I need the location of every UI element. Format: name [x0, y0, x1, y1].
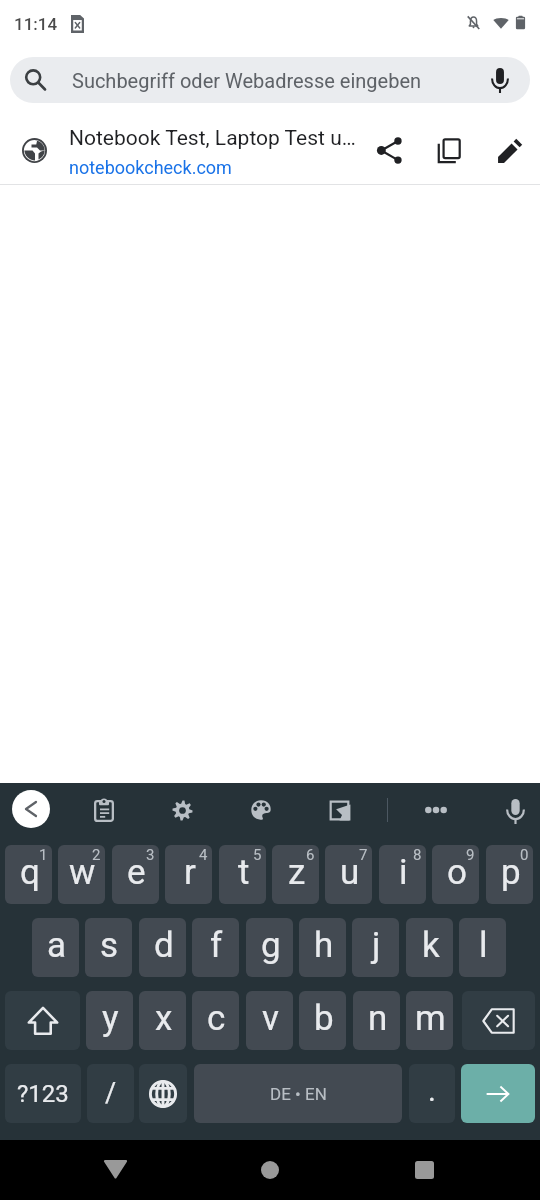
staticText: a	[47, 925, 67, 966]
button[interactable]: f	[192, 918, 239, 977]
staticText: k	[422, 925, 440, 966]
button[interactable]: u	[325, 845, 372, 904]
button[interactable]: Theme	[241, 790, 281, 830]
button[interactable]	[0, 103, 540, 185]
staticText: j	[372, 925, 381, 966]
staticText: h	[314, 925, 334, 966]
button[interactable]: Settings	[162, 790, 202, 830]
button[interactable]: Suchbegriff oder Webadresse eingeben	[10, 57, 530, 103]
staticText: p	[501, 852, 521, 893]
button[interactable]: Recents	[396, 1142, 452, 1198]
button[interactable]: Copy	[425, 128, 471, 174]
staticText: n	[368, 998, 388, 1039]
button[interactable]: w	[58, 845, 105, 904]
staticText: 1	[39, 846, 48, 864]
button[interactable]: Backspace	[462, 991, 535, 1050]
staticText: Suchbegriff oder Webadresse eingeben	[72, 69, 422, 92]
staticText: 3	[146, 846, 155, 864]
staticText: .	[428, 1073, 436, 1108]
staticText: o	[447, 852, 467, 893]
staticText: 5	[253, 846, 262, 864]
button[interactable]: x	[139, 991, 186, 1050]
button[interactable]: h	[299, 918, 346, 977]
staticText: t	[238, 852, 250, 893]
button[interactable]: r	[165, 845, 212, 904]
button[interactable]: Clipboard	[84, 790, 124, 830]
button[interactable]: e	[112, 845, 159, 904]
button[interactable]: Voice search	[477, 57, 523, 103]
staticText: f	[210, 925, 223, 966]
button[interactable]: d	[139, 918, 186, 977]
button[interactable]: v	[246, 991, 293, 1050]
button[interactable]: Voice input	[495, 791, 535, 831]
staticText: ?123	[17, 1080, 69, 1108]
staticText: 9	[466, 846, 475, 864]
staticText: /	[105, 1077, 117, 1109]
button[interactable]: /	[87, 1064, 134, 1123]
staticText: z	[288, 852, 306, 893]
button[interactable]: n	[353, 991, 400, 1050]
staticText: e	[127, 852, 146, 893]
button[interactable]: Go	[461, 1064, 535, 1123]
staticText: 6	[306, 846, 315, 864]
staticText: 2	[92, 846, 101, 864]
staticText: v	[262, 998, 279, 1039]
button[interactable]: Change language	[139, 1064, 187, 1123]
button[interactable]: j	[352, 918, 399, 977]
staticText: r	[184, 852, 196, 893]
staticText: 4	[199, 846, 208, 864]
button[interactable]: z	[272, 845, 319, 904]
button[interactable]: g	[246, 918, 293, 977]
staticText: notebookcheck.com	[69, 157, 232, 178]
staticText: y	[102, 998, 119, 1039]
staticText: s	[100, 925, 119, 966]
staticText: 11:14	[14, 14, 58, 34]
staticText: u	[340, 852, 360, 893]
staticText: i	[399, 852, 408, 893]
button[interactable]: c	[192, 991, 239, 1050]
staticText: q	[20, 852, 40, 893]
button[interactable]: m	[406, 991, 453, 1050]
button[interactable]: Back	[87, 1141, 143, 1197]
button[interactable]: .	[409, 1064, 455, 1123]
staticText: b	[314, 998, 334, 1039]
button[interactable]: o	[432, 845, 479, 904]
staticText: g	[261, 925, 281, 966]
staticText: w	[69, 852, 96, 893]
button[interactable]: s	[85, 918, 132, 977]
staticText: 0	[520, 846, 529, 864]
button[interactable]: More options	[416, 790, 456, 830]
button[interactable]: Shift	[5, 991, 80, 1050]
button[interactable]: Home	[242, 1142, 298, 1198]
staticText: 8	[413, 846, 422, 864]
button[interactable]: p	[486, 845, 533, 904]
staticText: m	[415, 998, 446, 1039]
button[interactable]: Share	[366, 128, 412, 174]
button[interactable]: b	[299, 991, 346, 1050]
button[interactable]: Edit	[487, 128, 533, 174]
staticText: d	[154, 925, 174, 966]
staticText: 7	[359, 846, 368, 864]
button[interactable]: Back	[12, 790, 50, 828]
button[interactable]: q	[5, 845, 52, 904]
staticText: l	[479, 925, 488, 966]
button[interactable]: t	[219, 845, 266, 904]
button[interactable]: k	[406, 918, 453, 977]
button[interactable]: a	[32, 918, 79, 977]
button[interactable]: y	[86, 991, 133, 1050]
button[interactable]: DE • EN	[194, 1064, 402, 1123]
button[interactable]: i	[379, 845, 426, 904]
button[interactable]: l	[459, 918, 506, 977]
staticText: Notebook Test, Laptop Test u…	[69, 126, 356, 151]
button[interactable]: ?123	[5, 1064, 81, 1123]
staticText: x	[155, 998, 173, 1039]
staticText: c	[207, 998, 226, 1039]
staticText: DE • EN	[270, 1084, 327, 1104]
button[interactable]: Sticker	[319, 790, 359, 830]
